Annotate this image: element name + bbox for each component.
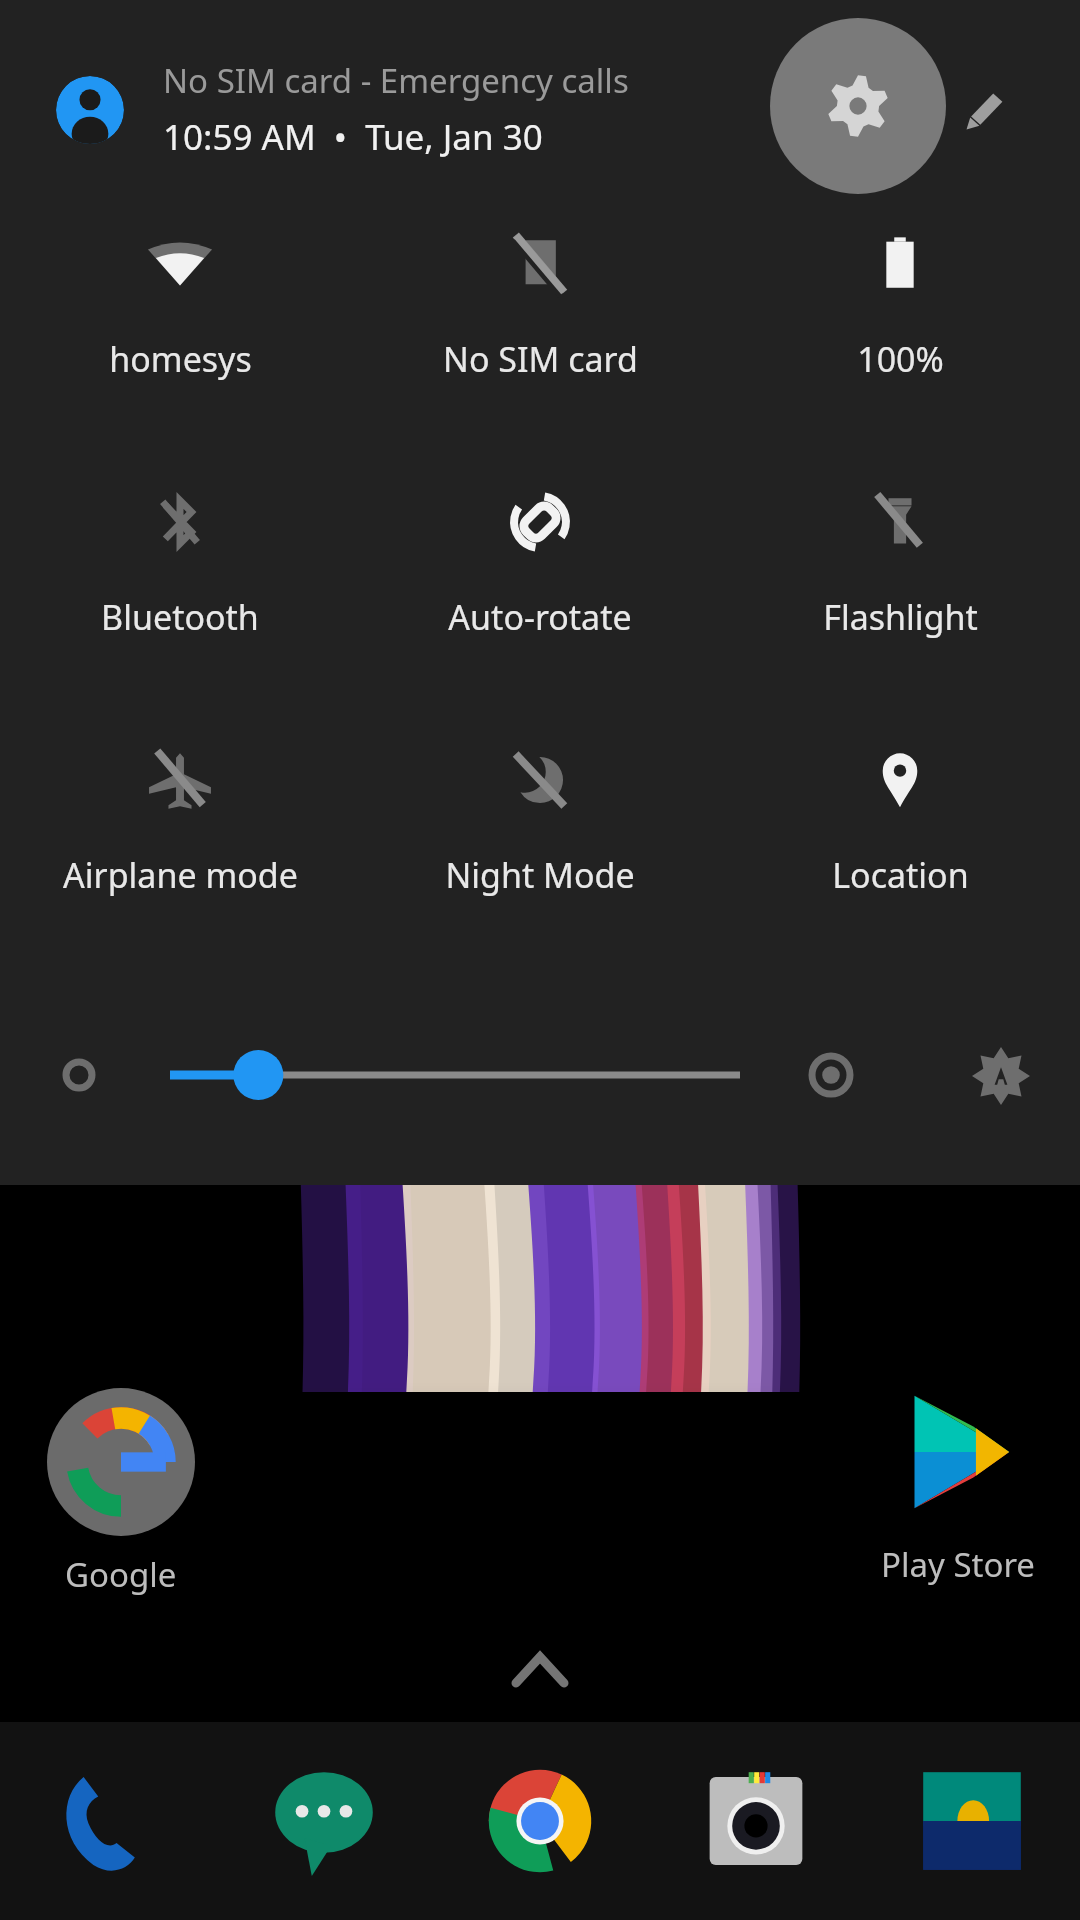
staticText: Play Store [881,1542,1035,1587]
button[interactable]: Gallery [864,1722,1080,1920]
staticText: homesys [109,336,252,382]
button[interactable]: Phone [0,1722,216,1920]
button[interactable]: Auto brightness [965,1040,1037,1112]
button[interactable]: Location [720,728,1080,986]
button[interactable]: Low brightness [52,1048,106,1102]
button[interactable]: Night Mode [360,728,720,986]
button[interactable]: High brightness [800,1044,862,1106]
staticText: 100% [857,336,944,382]
staticText: Flashlight [823,594,978,640]
button[interactable]: Settings [770,18,946,194]
staticText: Auto-rotate [448,594,632,640]
staticText: No SIM card [443,336,638,382]
button[interactable]: Auto-rotate [360,470,720,728]
button[interactable]: No SIM card [360,212,720,470]
button[interactable]: Camera [648,1722,864,1920]
button[interactable]: Flashlight [720,470,1080,728]
staticText: Bluetooth [101,594,259,640]
staticText: Google [65,1552,177,1597]
button[interactable]: Messages [216,1722,432,1920]
button[interactable]: homesys [0,212,360,470]
button[interactable]: 100% [720,212,1080,470]
staticText: No SIM card - Emergency calls [163,58,629,103]
button[interactable]: Google [46,1388,196,1618]
staticText: Airplane mode [63,852,298,898]
button[interactable]: Chrome [432,1722,648,1920]
staticText: 10:59 AM • Tue, Jan 30 [163,113,543,161]
button[interactable]: Open app drawer [500,1640,580,1700]
button[interactable]: Edit [945,72,1023,150]
button[interactable]: Airplane mode [0,728,360,986]
staticText: Location [832,852,969,898]
button[interactable]: Play Store [880,1388,1035,1618]
button[interactable]: Bluetooth [0,470,360,728]
staticText: Night Mode [445,852,635,898]
button[interactable]: Brightness [170,1040,740,1110]
button[interactable]: User [56,76,124,144]
